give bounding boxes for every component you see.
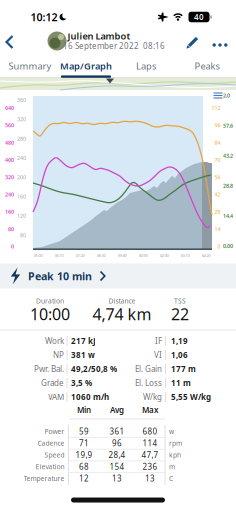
staticText: m bbox=[169, 462, 175, 471]
staticText: 43,2 bbox=[223, 152, 233, 159]
staticText: 39:40 bbox=[117, 253, 126, 258]
staticText: 3,5 % bbox=[71, 378, 92, 388]
staticText: 0,00 bbox=[223, 242, 233, 250]
staticText: 59 bbox=[79, 426, 89, 437]
staticText: C bbox=[169, 474, 173, 483]
staticText: 44:20 bbox=[201, 253, 210, 258]
staticText: 10:12 bbox=[30, 10, 57, 24]
button[interactable]: Map/Graph bbox=[60, 60, 112, 72]
staticText: Pwr. Bal. bbox=[34, 364, 64, 374]
staticText: 70 bbox=[214, 156, 220, 163]
staticText: 200 bbox=[17, 174, 26, 181]
button[interactable]: Back bbox=[1, 32, 17, 52]
staticText: 56 bbox=[214, 174, 220, 181]
staticText: 1,19 bbox=[171, 336, 188, 346]
staticText: NP bbox=[53, 350, 64, 360]
staticText: 96 bbox=[112, 438, 122, 448]
staticText: Max bbox=[142, 405, 158, 415]
staticText: 28,4 bbox=[108, 450, 125, 460]
staticText: 11 m bbox=[171, 378, 191, 388]
staticText: 49,2/50,8 % bbox=[71, 364, 117, 374]
staticText: Speed bbox=[44, 450, 64, 459]
staticText: 236 bbox=[142, 461, 157, 472]
staticText: 42 bbox=[214, 191, 220, 198]
staticText: IF bbox=[155, 336, 162, 346]
staticText: 160 bbox=[17, 193, 26, 200]
staticText: 1,06 bbox=[171, 350, 188, 360]
button[interactable]: Summary bbox=[8, 60, 51, 72]
staticText: TSS bbox=[174, 297, 186, 305]
staticText: Grade bbox=[41, 378, 64, 388]
staticText: El. Gain bbox=[135, 364, 162, 374]
staticText: 28 bbox=[214, 208, 220, 215]
staticText: 84 bbox=[214, 139, 220, 146]
staticText: Summary bbox=[8, 60, 51, 72]
button[interactable]: Laps bbox=[136, 60, 156, 72]
staticText: Avg bbox=[110, 405, 124, 415]
staticText: 381 w bbox=[71, 350, 95, 360]
staticText: Laps bbox=[136, 60, 156, 72]
staticText: Power bbox=[44, 427, 64, 436]
staticText: El. Loss bbox=[135, 378, 162, 388]
staticText: 28,8 bbox=[223, 182, 233, 189]
staticText: 4,74 km bbox=[92, 303, 151, 325]
staticText: Cadence bbox=[37, 439, 64, 448]
staticText: Julien Lambot bbox=[67, 30, 130, 42]
button[interactable]: More bbox=[212, 43, 227, 47]
button[interactable]: Peak 10 min bbox=[0, 263, 236, 288]
button[interactable]: Edit bbox=[184, 35, 200, 51]
staticText: 37:20 bbox=[75, 253, 84, 258]
staticText: 160 bbox=[5, 208, 14, 215]
staticText: 13 bbox=[112, 473, 122, 484]
staticText: 43:10 bbox=[180, 253, 189, 258]
staticText: kph bbox=[169, 450, 181, 459]
staticText: 217 kJ bbox=[71, 336, 96, 346]
staticText: 35:00 bbox=[33, 253, 42, 258]
staticText: 38:30 bbox=[96, 253, 105, 258]
staticText: 0 bbox=[217, 243, 220, 250]
staticText: 57,6 bbox=[223, 122, 233, 129]
staticText: 98 bbox=[214, 122, 220, 129]
staticText: 480 bbox=[5, 139, 14, 146]
staticText: 47,7 bbox=[141, 450, 158, 460]
staticText: 80 bbox=[20, 232, 26, 239]
button[interactable]: Peaks bbox=[194, 60, 219, 72]
staticText: 40:50 bbox=[138, 253, 147, 258]
staticText: 400 bbox=[5, 156, 14, 163]
staticText: 13 bbox=[145, 473, 155, 484]
staticText: W/kg bbox=[143, 392, 162, 402]
staticText: 154 bbox=[109, 461, 124, 472]
staticText: 361 bbox=[109, 426, 124, 437]
staticText: 36:10 bbox=[54, 253, 63, 258]
staticText: VAM bbox=[48, 392, 64, 402]
staticText: w bbox=[169, 427, 174, 436]
staticText: 2,0 bbox=[223, 92, 230, 99]
staticText: 360 bbox=[17, 96, 26, 104]
staticText: VI bbox=[154, 350, 162, 360]
staticText: 320 bbox=[5, 174, 14, 181]
staticText: 177 m bbox=[171, 364, 196, 374]
staticText: 42:00 bbox=[159, 253, 168, 258]
staticText: 1060 m/h bbox=[71, 392, 109, 402]
staticText: 240 bbox=[17, 154, 26, 161]
button[interactable]: Chart options bbox=[213, 92, 222, 99]
staticText: 114 bbox=[142, 438, 157, 448]
staticText: Map/Graph bbox=[60, 60, 112, 72]
staticText: rpm bbox=[169, 439, 182, 448]
staticText: 0 bbox=[11, 243, 14, 250]
staticText: 80 bbox=[8, 226, 14, 233]
staticText: Distance bbox=[108, 297, 135, 305]
staticText: 112 bbox=[211, 104, 220, 112]
staticText: 320 bbox=[17, 116, 26, 123]
staticText: 680 bbox=[142, 426, 157, 437]
staticText: Peak 10 min bbox=[28, 269, 92, 283]
staticText: 5,55 W/kg bbox=[171, 392, 211, 402]
staticText: 19,9 bbox=[75, 450, 92, 460]
staticText: Temperature bbox=[23, 474, 64, 483]
staticText: 14,4 bbox=[223, 212, 233, 219]
staticText: 240 bbox=[5, 191, 14, 198]
staticText: 14 bbox=[214, 226, 220, 233]
staticText: Min bbox=[77, 405, 91, 415]
staticText: Peaks bbox=[194, 60, 219, 72]
staticText: 12 bbox=[79, 473, 89, 484]
